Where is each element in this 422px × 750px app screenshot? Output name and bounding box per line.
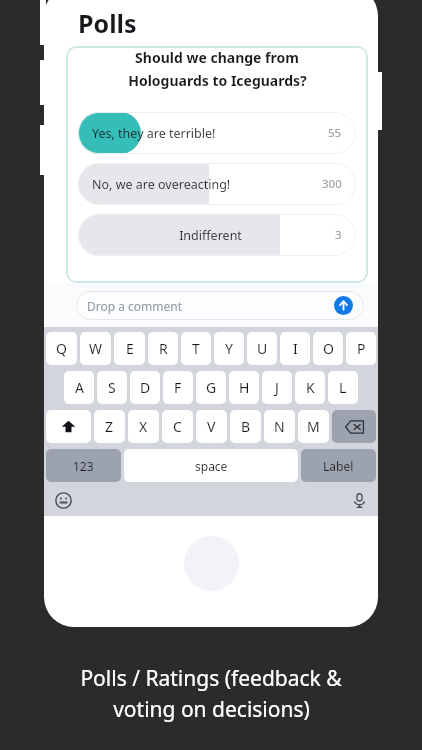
button[interactable]: D xyxy=(130,371,160,404)
button[interactable]: E xyxy=(114,332,145,365)
staticText: X xyxy=(139,417,148,436)
button[interactable]: O xyxy=(313,332,343,365)
staticText: Polls / Ratings (feedback & xyxy=(80,664,342,693)
button[interactable]: P xyxy=(346,332,376,365)
staticText: T xyxy=(192,339,200,358)
button[interactable]: X xyxy=(128,410,159,443)
button[interactable]: 123 xyxy=(46,449,121,482)
staticText: D xyxy=(140,378,151,397)
button[interactable]: W xyxy=(80,332,111,365)
staticText: Indifferent xyxy=(92,227,329,244)
button[interactable]: G xyxy=(196,371,226,404)
staticText: Hologuards to Iceguards? xyxy=(128,71,307,90)
button[interactable]: Q xyxy=(46,332,77,365)
button[interactable]: A xyxy=(64,371,94,404)
button[interactable]: U xyxy=(247,332,277,365)
staticText: Z xyxy=(105,417,114,436)
staticText: L xyxy=(339,378,347,397)
button[interactable]: Yes, they are terrible! xyxy=(78,112,356,154)
button[interactable]: Backspace xyxy=(332,410,376,443)
staticText: M xyxy=(307,417,320,436)
staticText: Yes, they are terrible! xyxy=(92,125,322,142)
button[interactable]: B xyxy=(230,410,261,443)
staticText: Label xyxy=(323,458,354,474)
button[interactable]: N xyxy=(264,410,295,443)
staticText: G xyxy=(206,378,217,397)
staticText: Q xyxy=(56,339,67,358)
button[interactable]: Emoji xyxy=(52,489,74,511)
staticText: Should we change from xyxy=(135,48,299,67)
staticText: I xyxy=(293,339,298,358)
staticText: R xyxy=(159,339,168,358)
button[interactable]: Drop a comment xyxy=(76,291,364,320)
button[interactable]: C xyxy=(162,410,193,443)
staticText: O xyxy=(323,339,334,358)
button[interactable]: M xyxy=(298,410,329,443)
staticText: J xyxy=(275,378,279,397)
button[interactable]: Indifferent xyxy=(78,214,356,256)
button[interactable]: space xyxy=(124,449,298,482)
staticText: 123 xyxy=(73,458,94,474)
button[interactable]: L xyxy=(328,371,358,404)
staticText: E xyxy=(126,339,134,358)
staticText: N xyxy=(274,417,285,436)
button[interactable]: S xyxy=(97,371,127,404)
staticText: 55 xyxy=(328,125,342,141)
button[interactable]: K xyxy=(295,371,325,404)
button[interactable]: J xyxy=(262,371,292,404)
button[interactable]: Label xyxy=(301,449,376,482)
staticText: space xyxy=(195,458,228,474)
staticText: Y xyxy=(225,339,233,358)
button[interactable]: No, we are overeacting! xyxy=(78,163,356,205)
staticText: Polls xyxy=(78,6,137,40)
button[interactable]: V xyxy=(196,410,227,443)
staticText: No, we are overeacting! xyxy=(92,176,316,193)
staticText: A xyxy=(75,378,84,397)
staticText: voting on decisions) xyxy=(113,695,310,724)
button[interactable]: T xyxy=(181,332,211,365)
button[interactable]: R xyxy=(148,332,178,365)
staticText: S xyxy=(108,378,116,397)
button[interactable]: I xyxy=(280,332,310,365)
staticText: K xyxy=(306,378,315,397)
button[interactable]: F xyxy=(163,371,193,404)
staticText: B xyxy=(241,417,251,436)
button[interactable]: Send comment xyxy=(334,296,353,315)
staticText: Drop a comment xyxy=(87,298,334,314)
staticText: V xyxy=(207,417,216,436)
staticText: C xyxy=(173,417,182,436)
button[interactable]: Shift xyxy=(46,410,91,443)
button[interactable]: Home xyxy=(184,536,239,591)
staticText: W xyxy=(89,339,103,358)
staticText: 300 xyxy=(322,176,342,192)
button[interactable]: Z xyxy=(94,410,125,443)
staticText: 3 xyxy=(335,227,342,243)
button[interactable]: Y xyxy=(214,332,244,365)
button[interactable]: Voice input xyxy=(348,489,370,511)
staticText: H xyxy=(239,378,250,397)
button[interactable]: H xyxy=(229,371,259,404)
staticText: U xyxy=(257,339,268,358)
staticText: F xyxy=(174,378,182,397)
staticText: P xyxy=(357,339,366,358)
